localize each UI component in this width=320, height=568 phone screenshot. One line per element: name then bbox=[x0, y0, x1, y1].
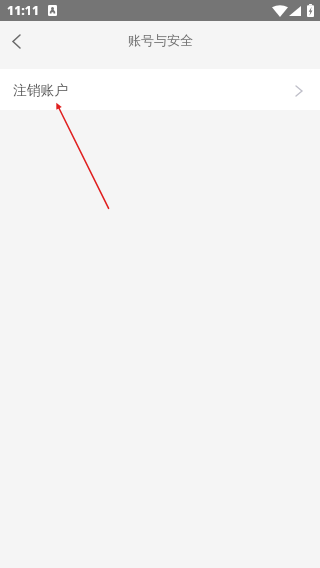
button[interactable]: 注销账户 bbox=[0, 69, 320, 110]
button[interactable]: Back bbox=[0, 24, 32, 58]
staticText: 11:11 bbox=[7, 2, 40, 19]
staticText: 账号与安全 bbox=[128, 32, 193, 48]
staticText: 注销账户 bbox=[13, 82, 69, 99]
